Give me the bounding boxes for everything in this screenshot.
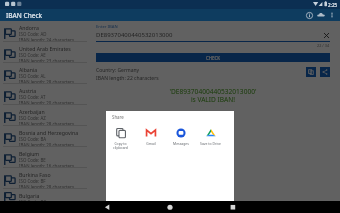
button[interactable]: Clear [322, 31, 330, 39]
staticText: 2:25 [328, 2, 338, 8]
staticText: Copy to clipboard [113, 141, 128, 150]
button[interactable]: Save to Drive [196, 127, 225, 146]
staticText: 'DE89370400440532013000' is VALID IBAN! [96, 87, 330, 104]
staticText: Austria [19, 87, 37, 94]
staticText: ISO Code: BE [19, 157, 46, 163]
button[interactable]: Austria [0, 84, 88, 104]
staticText: Gmail [146, 141, 156, 146]
staticText: ISO Code: AD [19, 31, 47, 37]
staticText: 22 / 34 [317, 43, 330, 48]
staticText: Azerbaijan [19, 108, 45, 115]
staticText: IBAN length: 23 characters [19, 58, 74, 62]
staticText: ISO Code: AE [19, 52, 46, 58]
button[interactable]: Gmail [136, 127, 165, 146]
staticText: IBAN length: 20 characters [19, 142, 74, 146]
staticText: Burkina Faso [19, 171, 51, 178]
staticText: IBAN Check [6, 11, 43, 20]
button[interactable]: Copy [306, 67, 316, 77]
staticText: United Arab Emirates [19, 45, 71, 52]
staticText: DE89370400440532013000 [96, 31, 322, 39]
staticText: IBAN length: 22 characters [96, 75, 159, 82]
staticText: Share [112, 114, 124, 120]
button[interactable]: Belgium [0, 147, 88, 167]
staticText: IBAN length: 28 characters [19, 184, 74, 188]
staticText: ISO Code: AL [19, 73, 46, 79]
staticText: ISO Code: BA [19, 136, 47, 142]
staticText: IBAN length: 16 characters [19, 163, 74, 167]
staticText: ISO Code: BF [19, 178, 46, 184]
staticText: IBAN length: 24 characters [19, 37, 74, 41]
staticText: Save to Drive [200, 141, 221, 146]
staticText: ISO Code: AT [19, 94, 46, 100]
staticText: Bosnia and Herzegovina [19, 129, 79, 136]
button[interactable]: Share [320, 67, 330, 77]
staticText: Albania [19, 66, 38, 73]
staticText: Belgium [19, 150, 40, 157]
button[interactable]: Bulgaria [0, 189, 88, 201]
button[interactable]: Andorra [0, 21, 88, 41]
button[interactable]: Info [303, 9, 315, 21]
button[interactable]: United Arab Emirates [0, 42, 88, 62]
button[interactable]: Albania [0, 63, 88, 83]
button[interactable]: Copy to clipboard [106, 127, 135, 150]
button[interactable]: Burkina Faso [0, 168, 88, 188]
button[interactable]: More options [327, 10, 337, 20]
button[interactable]: CHECK [96, 53, 330, 62]
button[interactable]: Messages [166, 127, 195, 146]
staticText: Andorra [19, 24, 39, 31]
staticText: ISO Code: AZ [19, 115, 46, 121]
staticText: CHECK [206, 55, 221, 61]
button[interactable]: Azerbaijan [0, 105, 88, 125]
staticText: IBAN length: 20 characters [19, 100, 74, 104]
staticText: ISO Code: BG [19, 199, 47, 201]
staticText: Bulgaria [19, 192, 40, 199]
button[interactable]: Cloud sync [315, 9, 327, 21]
staticText: Country: Germany [96, 67, 140, 74]
staticText: Enter IBAN [96, 24, 118, 30]
staticText: IBAN length: 28 characters [19, 79, 74, 83]
button[interactable]: Bosnia and Herzegovina [0, 126, 88, 146]
staticText: Messages [173, 141, 189, 146]
staticText: IBAN length: 28 characters [19, 121, 74, 125]
